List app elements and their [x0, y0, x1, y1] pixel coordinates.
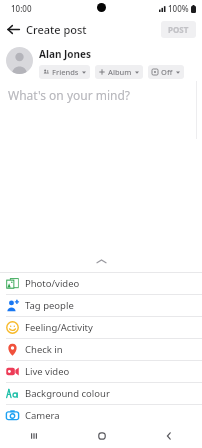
button[interactable]: Background colour [0, 383, 202, 404]
staticText: POST [168, 24, 189, 35]
staticText: Friends [52, 67, 79, 77]
staticText: Create post [26, 22, 87, 37]
button[interactable]: Home [68, 423, 135, 448]
staticText: Check in [25, 343, 63, 356]
button[interactable]: Back [135, 423, 202, 448]
staticText: Background colour [25, 387, 110, 400]
staticText: GIF [25, 431, 41, 444]
button[interactable]: POST [161, 21, 196, 38]
staticText: What's on your mind? [8, 87, 131, 103]
staticText: Off [161, 67, 173, 77]
button[interactable]: Back [0, 16, 26, 42]
staticText: Alan Jones [39, 47, 92, 61]
button[interactable]: Live video [0, 361, 202, 382]
staticText: Camera [25, 409, 60, 422]
button[interactable]: GIF [0, 427, 202, 448]
button[interactable]: Friends [39, 65, 90, 79]
staticText: Live video [25, 365, 70, 378]
button[interactable]: What's on your mind? [0, 79, 202, 199]
button[interactable]: Album [95, 65, 143, 79]
button[interactable]: Camera [0, 405, 202, 426]
button[interactable]: Expand options [0, 250, 202, 272]
staticText: Album [108, 67, 132, 77]
staticText: Tag people [25, 299, 74, 312]
staticText: 100% [168, 3, 189, 14]
staticText: Feeling/Activity [25, 321, 93, 334]
button[interactable]: Off [148, 65, 184, 79]
button[interactable]: Recent apps [0, 423, 68, 448]
staticText: 10:00 [11, 3, 32, 14]
button[interactable]: Profile picture [6, 47, 33, 74]
button[interactable]: Photo/video [0, 273, 202, 294]
button[interactable]: Tag people [0, 295, 202, 316]
staticText: Photo/video [25, 277, 80, 290]
button[interactable]: Check in [0, 339, 202, 360]
button[interactable]: Feeling/Activity [0, 317, 202, 338]
